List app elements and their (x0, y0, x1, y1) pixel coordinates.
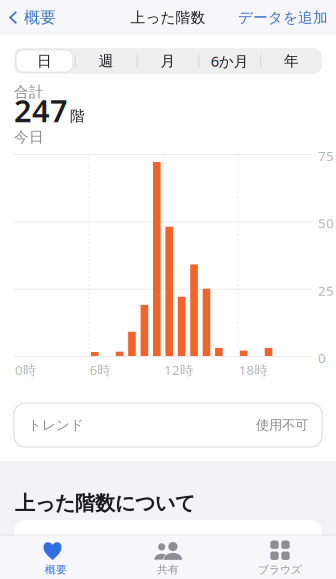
staticText: 12時 (164, 361, 193, 379)
staticText: 月 (160, 52, 175, 70)
staticText: 上った階数 (130, 8, 205, 26)
staticText: 概要 (24, 8, 56, 27)
staticText: 週 (99, 52, 114, 70)
staticText: 年 (284, 52, 299, 70)
button[interactable]: 6か月 (199, 50, 260, 72)
staticText: 階 (70, 107, 85, 125)
staticText: 75 (318, 147, 334, 165)
staticText: 共有 (157, 563, 179, 576)
staticText: 0 (318, 349, 326, 367)
staticText: 6時 (89, 361, 110, 379)
staticText: 日 (37, 52, 52, 70)
button[interactable]: 年 (261, 50, 322, 72)
staticText: 0時 (15, 361, 36, 379)
button[interactable]: 共有 (112, 535, 224, 579)
staticText: 使用不可 (256, 417, 308, 433)
button[interactable]: ブラウズ (224, 535, 336, 579)
button[interactable]: 週 (76, 50, 137, 72)
staticText: 今日 (14, 128, 44, 146)
staticText: ブラウズ (258, 563, 302, 576)
staticText: トレンド (28, 417, 84, 433)
button[interactable]: 日 (14, 50, 75, 72)
button[interactable]: 概要 (0, 0, 56, 35)
staticText: 25 (318, 282, 334, 299)
staticText: 247 (14, 90, 68, 131)
staticText: 上った階数について (15, 491, 195, 516)
staticText: 50 (318, 214, 334, 232)
button[interactable]: 概要 (0, 535, 112, 579)
button[interactable]: 月 (138, 50, 198, 72)
staticText: データを追加 (238, 8, 328, 26)
button[interactable]: データを追加 (238, 0, 336, 34)
staticText: 18時 (238, 361, 267, 379)
staticText: 概要 (45, 563, 67, 576)
button[interactable]: トレンド (14, 403, 322, 447)
staticText: 合計 (14, 83, 44, 101)
staticText: 6か月 (211, 51, 249, 71)
